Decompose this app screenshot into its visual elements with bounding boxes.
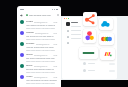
button[interactable]: Airtable	[83, 29, 96, 43]
staticText: Twitter	[26, 53, 33, 56]
staticText: Top stories for you this week in	[26, 35, 54, 38]
staticText: Discover new releases today on	[26, 68, 54, 71]
button[interactable]: Spotify	[17, 63, 61, 74]
staticText: read more about the latest news	[26, 49, 55, 51]
staticText: read more about the latest news	[26, 82, 55, 84]
staticText: Your weekly summary is ready to	[26, 24, 56, 27]
button[interactable]: Salesforce	[99, 18, 113, 30]
staticText: 12:02	[53, 43, 58, 45]
button[interactable]: Dropbox	[17, 41, 61, 52]
button[interactable]: Medium	[17, 30, 61, 41]
staticText: noreply@mail.co	[34, 54, 48, 56]
button[interactable]: Twitter	[17, 52, 61, 63]
staticText: mail.google.com/u/0/#inbox	[29, 14, 58, 17]
button[interactable]: Back	[20, 14, 23, 17]
button[interactable]: Google Ads	[99, 33, 114, 45]
staticText: Spotify	[26, 64, 33, 67]
staticText: noreply@mail.co	[34, 65, 48, 67]
staticText: Your workspace has been updated	[26, 79, 57, 82]
button[interactable]	[83, 68, 115, 73]
button[interactable]: Google	[17, 19, 61, 30]
staticText: Google	[26, 20, 33, 23]
staticText: 12:04	[53, 65, 58, 67]
staticText: 12:01	[53, 32, 58, 34]
button[interactable]: HubSpot	[83, 12, 97, 26]
button[interactable]: App	[66, 22, 70, 26]
staticText: 12:00	[53, 21, 58, 23]
staticText: read more about the latest news	[26, 27, 55, 29]
staticText: Medium	[26, 31, 34, 34]
staticText: 12:03	[53, 54, 58, 56]
staticText: noreply@mail.co	[35, 32, 49, 34]
button[interactable]	[83, 61, 115, 66]
staticText: Notion	[26, 75, 33, 78]
staticText: 12:05	[53, 76, 58, 78]
staticText: noreply@mail.co	[36, 43, 50, 45]
button[interactable]: Pipedrive	[79, 47, 98, 59]
staticText: read more about the latest news	[26, 71, 55, 73]
staticText: noreply@mail.co	[34, 76, 48, 78]
button[interactable]: Notion	[17, 74, 61, 85]
staticText: read more about the latest news	[26, 38, 55, 40]
staticText: Dropbox	[26, 42, 35, 45]
staticText: noreply@mail.co	[34, 21, 48, 23]
staticText: read more about the latest news	[26, 60, 55, 62]
staticText: New file shared with your team	[26, 46, 54, 49]
button[interactable]: Mailchimp	[100, 48, 115, 60]
staticText: See what's happening right now	[26, 57, 55, 60]
